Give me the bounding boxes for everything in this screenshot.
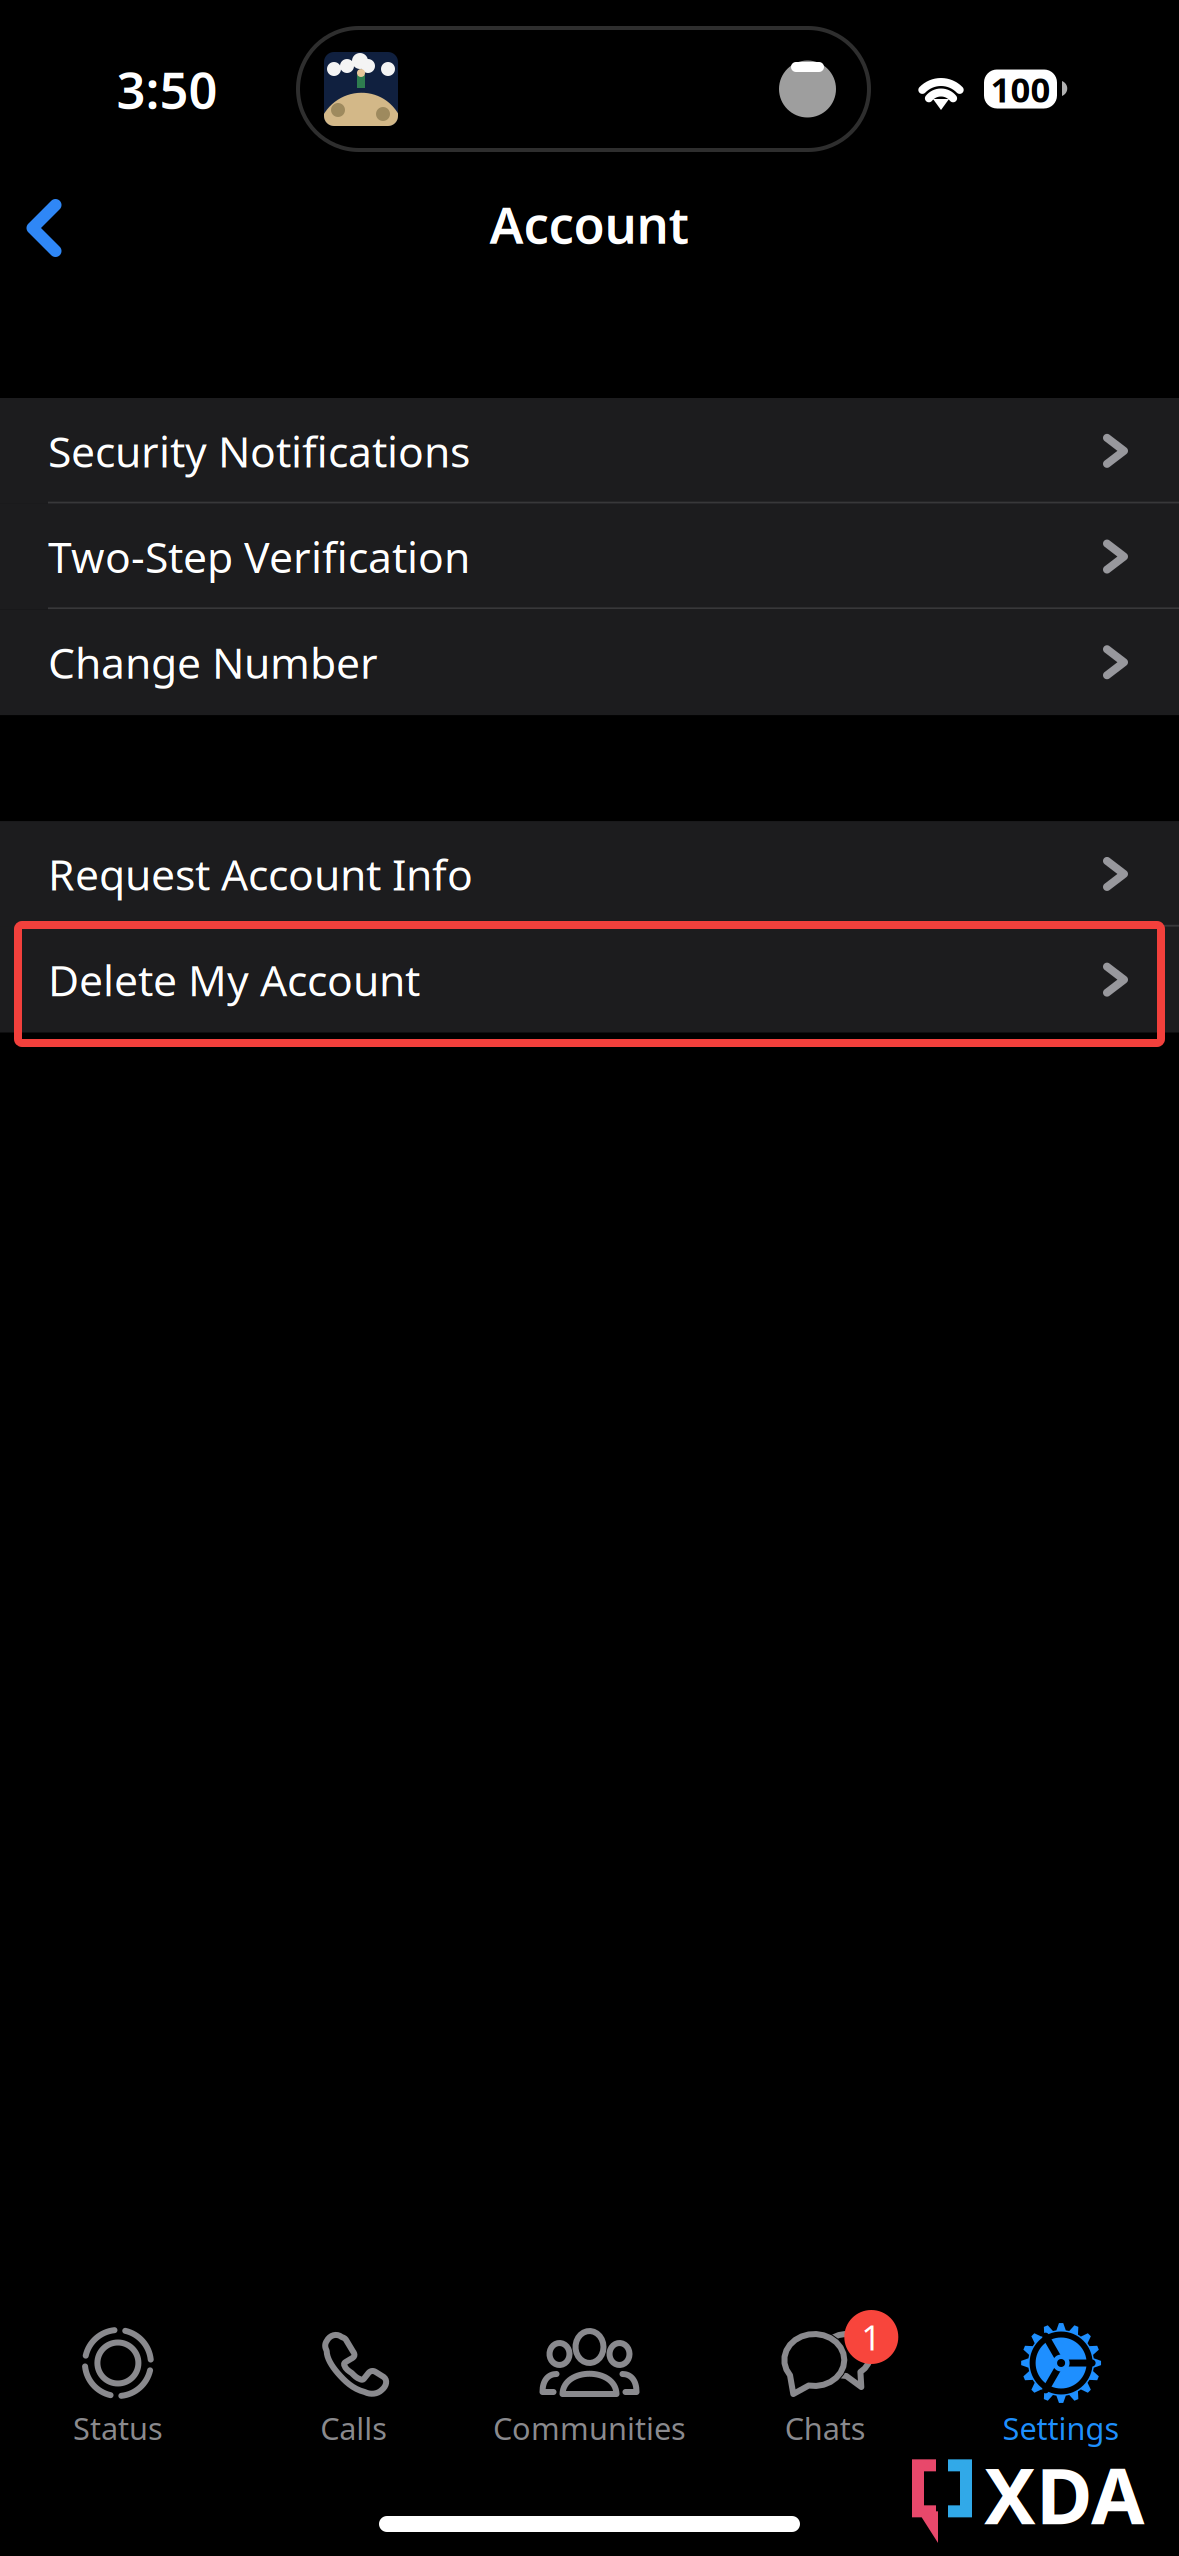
staticText: Status bbox=[73, 2408, 163, 2448]
button[interactable]: Change Number bbox=[0, 609, 1179, 715]
staticText: 3:50 bbox=[116, 55, 217, 123]
staticText: Settings bbox=[1003, 2408, 1120, 2448]
button[interactable]: Status bbox=[0, 2322, 236, 2444]
button[interactable]: Communities bbox=[472, 2322, 707, 2444]
staticText: Two-Step Verification bbox=[48, 528, 470, 585]
staticText: XDA bbox=[984, 2443, 1145, 2546]
button[interactable]: Delete My Account bbox=[0, 927, 1179, 1032]
button[interactable]: Request Account Info bbox=[0, 821, 1179, 927]
button[interactable]: Calls bbox=[236, 2322, 472, 2444]
staticText: Change Number bbox=[48, 634, 378, 691]
staticText: 1 bbox=[861, 2314, 881, 2360]
staticText: Delete My Account bbox=[48, 951, 420, 1008]
button[interactable]: 1 bbox=[707, 2322, 943, 2444]
staticText: Chats bbox=[785, 2408, 866, 2448]
staticText: Security Notifications bbox=[48, 422, 470, 479]
button[interactable]: Back bbox=[0, 180, 88, 276]
button[interactable]: Two-Step Verification bbox=[0, 504, 1179, 609]
staticText: Calls bbox=[320, 2408, 387, 2448]
staticText: Communities bbox=[493, 2408, 686, 2448]
staticText: Request Account Info bbox=[48, 846, 473, 902]
button[interactable]: Security Notifications bbox=[0, 398, 1179, 504]
staticText: 100 bbox=[990, 66, 1050, 112]
staticText: Account bbox=[489, 190, 689, 258]
button[interactable]: Settings bbox=[943, 2322, 1179, 2444]
